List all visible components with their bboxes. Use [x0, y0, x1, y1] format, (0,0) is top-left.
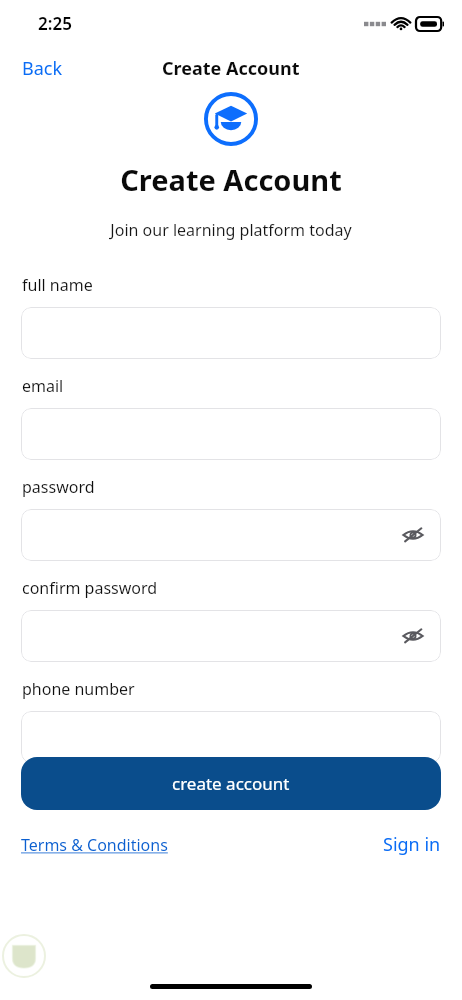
staticText: Join our learning platform today	[0, 219, 462, 241]
staticText: Sign in	[383, 832, 441, 857]
staticText: create account	[172, 772, 290, 795]
button[interactable]: Show password	[21, 509, 441, 561]
staticText: Create Account	[0, 160, 462, 199]
button[interactable]: create account	[21, 757, 441, 810]
button[interactable]: Terms & Conditions	[21, 834, 168, 856]
button[interactable]: Show password	[21, 610, 441, 662]
button[interactable]	[21, 711, 441, 763]
staticText: confirm password	[22, 577, 158, 599]
staticText: 2:25	[38, 12, 72, 35]
staticText: email	[22, 375, 64, 397]
button[interactable]	[21, 307, 441, 359]
staticText: Create Account	[162, 56, 300, 81]
staticText: password	[22, 476, 95, 498]
button[interactable]	[21, 408, 441, 460]
staticText: Terms & Conditions	[21, 834, 168, 856]
button[interactable]: Back	[0, 50, 85, 87]
staticText: full name	[22, 274, 93, 296]
staticText: phone number	[22, 678, 135, 700]
staticText: Back	[22, 56, 63, 81]
button[interactable]: Sign in	[383, 832, 441, 857]
button[interactable]: Show password	[395, 517, 431, 553]
button[interactable]: Show password	[395, 618, 431, 654]
